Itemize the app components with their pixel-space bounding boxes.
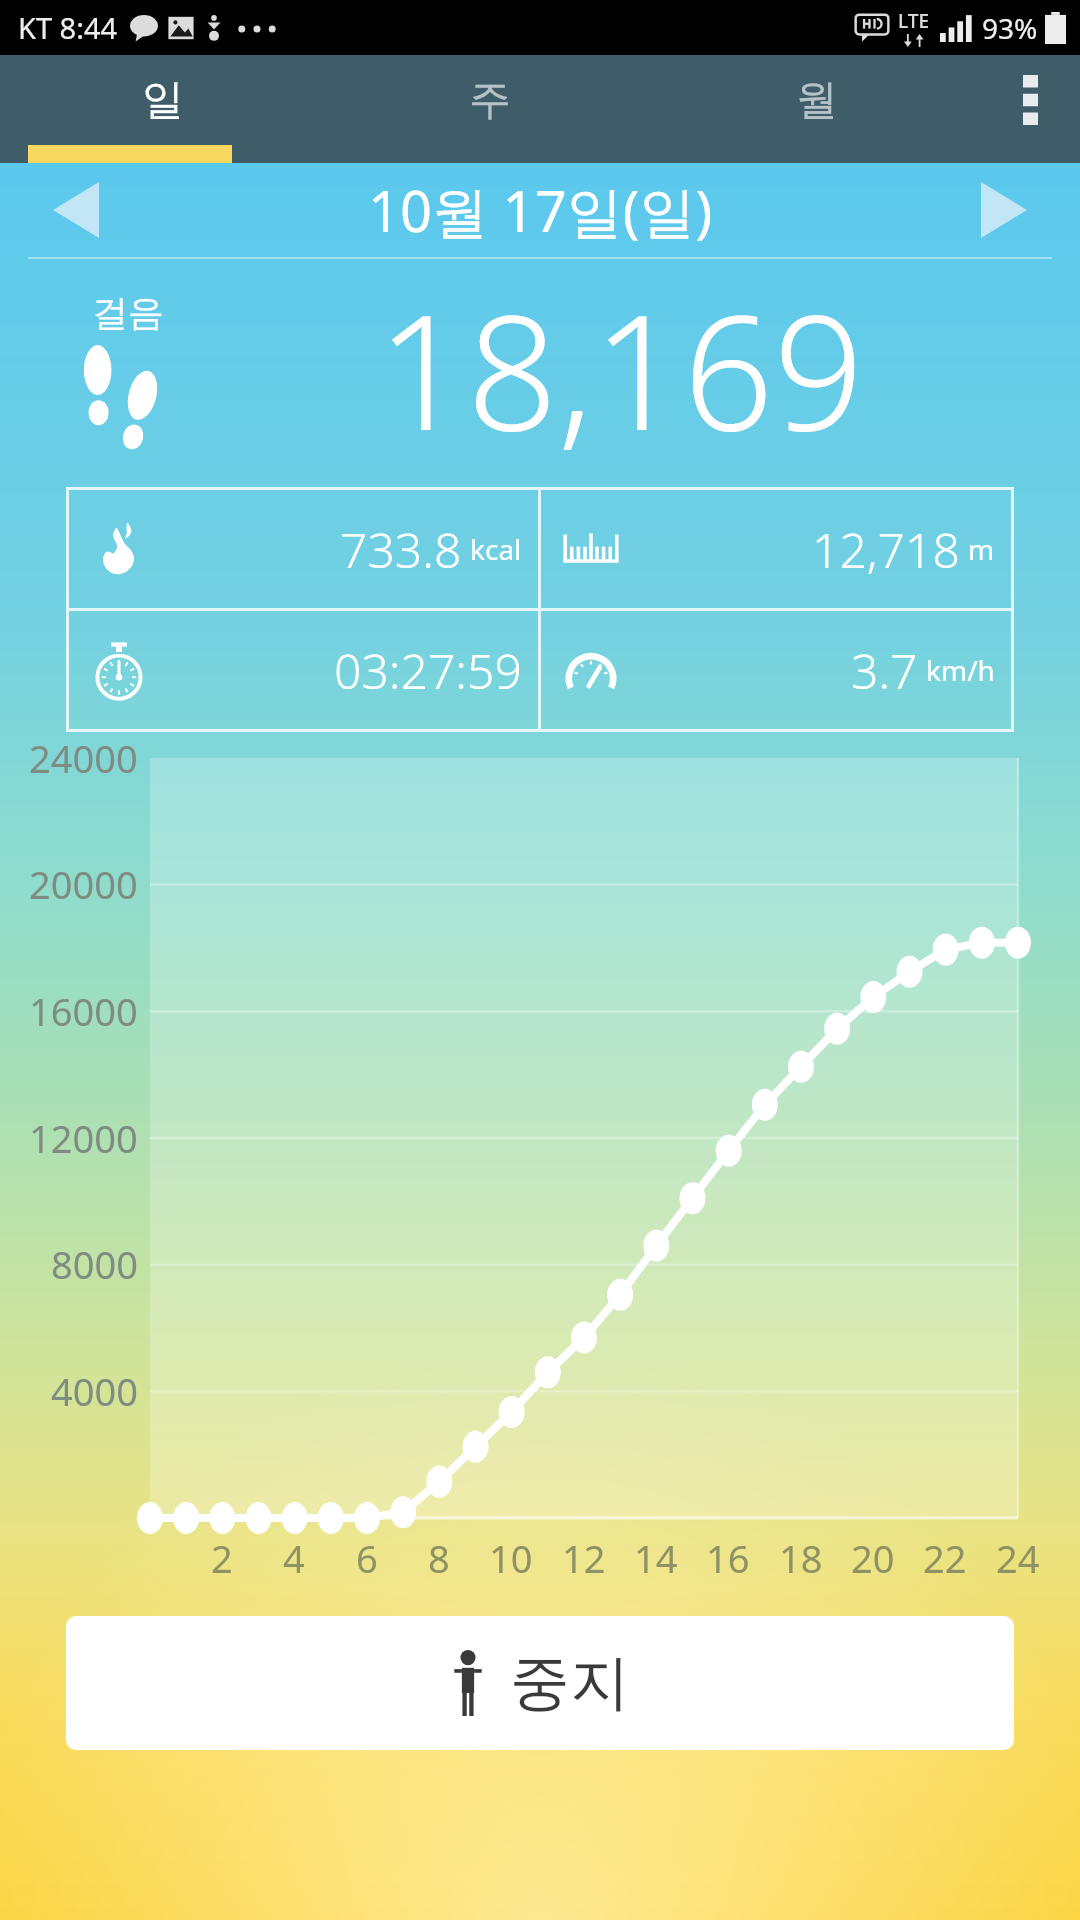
staticText: 20 [851,1532,895,1584]
staticText: 14 [634,1532,678,1584]
staticText: 22 [923,1532,967,1584]
staticText: 8000 [51,1238,138,1290]
button[interactable]: 03:27:59 [69,611,538,729]
staticText: 20000 [29,858,138,910]
button[interactable]: 월 [653,55,980,145]
staticText: 3.7 [851,638,918,703]
staticText: 24 [996,1532,1040,1584]
button[interactable]: Next day [962,168,1046,252]
staticText: 03:27:59 [334,638,522,703]
staticText: 주 [469,74,511,127]
staticText: 16000 [29,985,138,1037]
staticText: 18 [779,1532,823,1584]
staticText: 4 [283,1532,305,1584]
staticText: LTE [898,8,930,34]
button[interactable]: 주 [326,55,653,145]
staticText: 93% [982,9,1038,47]
staticText: 걸음 [92,290,164,335]
staticText: kcal [470,530,522,568]
staticText: 중지 [510,1645,630,1721]
button[interactable]: Previous day [34,168,118,252]
staticText: m [968,530,995,568]
staticText: 일 [142,74,184,127]
staticText: 월 [796,74,838,127]
staticText: 12000 [29,1112,138,1164]
staticText: KT 8:44 [18,8,118,47]
staticText: 16 [706,1532,750,1584]
button[interactable]: 3.7 [541,611,1011,729]
staticText: 10 [489,1532,533,1584]
staticText: 12 [562,1532,606,1584]
staticText: 8 [428,1532,450,1584]
staticText: 24000 [29,732,138,784]
staticText: 6 [356,1532,378,1584]
staticText: 2 [211,1532,233,1584]
staticText: 18,169 [377,261,864,476]
button[interactable]: More options [980,55,1080,145]
button[interactable]: 중지 [66,1616,1014,1750]
button[interactable]: 일 [0,55,326,145]
staticText: 733.8 [340,517,462,582]
staticText: km/h [926,651,995,689]
button[interactable]: 733.8 [69,490,538,608]
button[interactable]: 12,718 [541,490,1011,608]
staticText: 10월 17일(일) [368,172,713,248]
staticText: 4000 [51,1365,138,1417]
staticText: 12,718 [812,517,960,582]
